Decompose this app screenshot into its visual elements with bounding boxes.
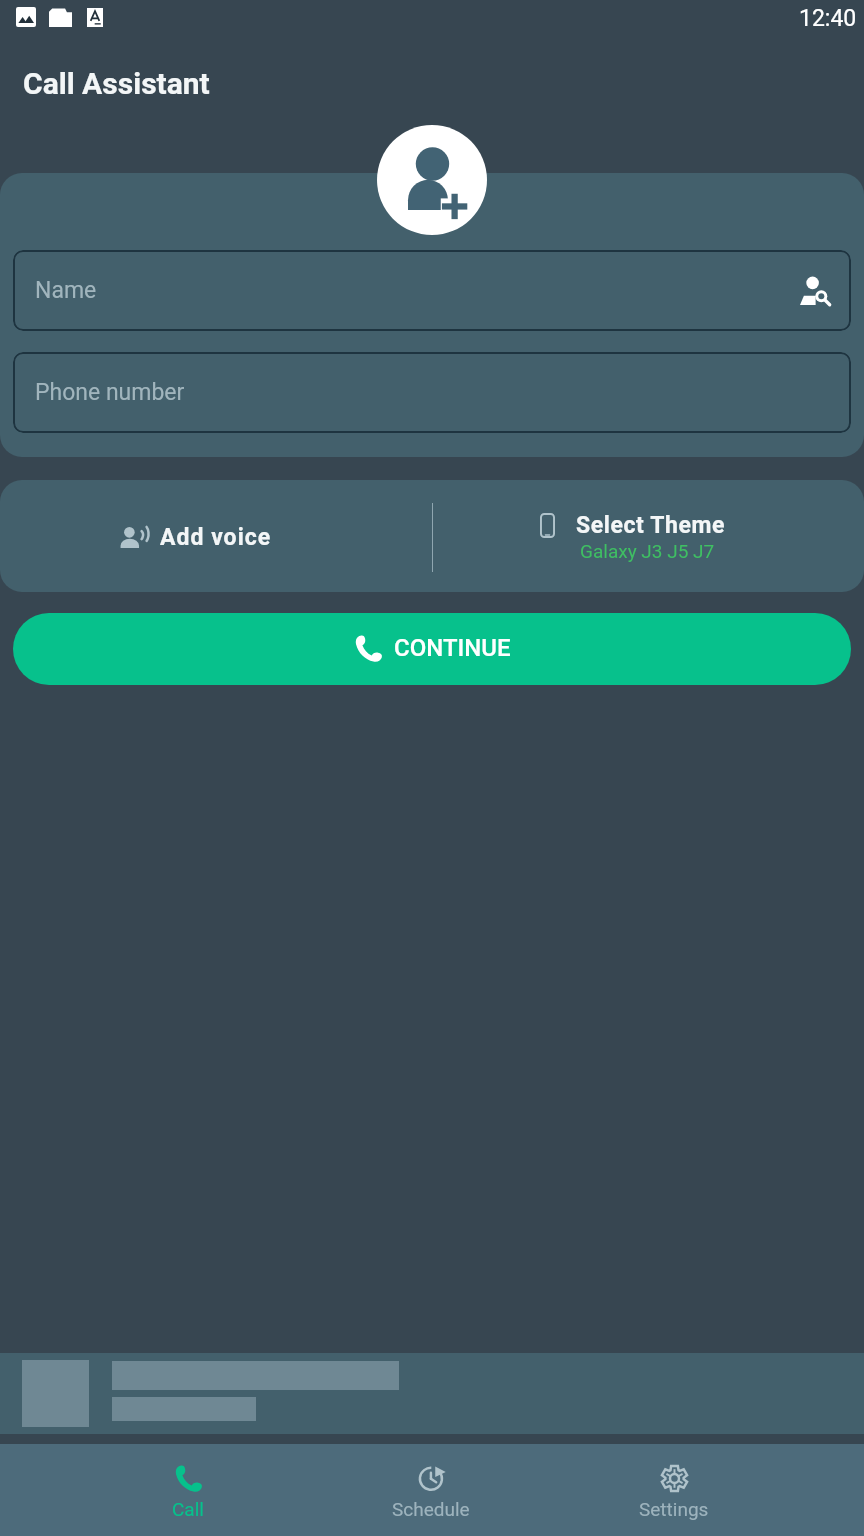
other: Pick contact xyxy=(800,277,830,305)
staticText: Add voice xyxy=(160,524,272,551)
staticText: 12:40 xyxy=(799,5,857,32)
staticText: Name xyxy=(35,277,97,304)
button[interactable]: Name xyxy=(13,250,851,331)
button[interactable]: Settings xyxy=(614,1444,734,1536)
button[interactable]: Phone number xyxy=(13,352,851,433)
button[interactable]: Advertisement xyxy=(0,1353,864,1434)
staticText: Call Assistant xyxy=(23,66,210,101)
staticText: Select Theme xyxy=(576,512,726,539)
button[interactable]: CONTINUE xyxy=(13,613,851,685)
button[interactable]: Add voice xyxy=(0,480,432,592)
staticText: Schedule xyxy=(392,1498,470,1520)
staticText: Call xyxy=(172,1498,204,1520)
button[interactable]: Schedule xyxy=(371,1444,491,1536)
button[interactable]: Call xyxy=(128,1444,248,1536)
button[interactable]: Add contact photo xyxy=(377,125,487,235)
button[interactable]: Select Theme xyxy=(433,480,864,592)
staticText: Phone number xyxy=(35,379,185,406)
staticText: CONTINUE xyxy=(394,634,511,662)
staticText: Galaxy J3 J5 J7 xyxy=(580,540,715,562)
staticText: Settings xyxy=(639,1498,709,1520)
